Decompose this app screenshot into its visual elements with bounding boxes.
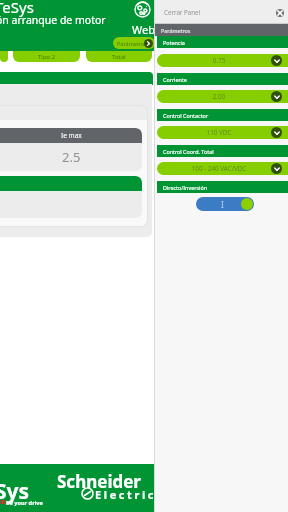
staticText: 110 VDC [158,128,280,137]
staticText: ón arranque de motor [0,13,106,27]
staticText: 100 - 240 VAC/VDC [158,164,280,173]
staticText: Control Coord. Total [163,148,214,155]
button[interactable]: 2.00 [157,90,288,103]
staticText: Corriente [163,76,187,83]
button[interactable]: Cerrar Panel [155,0,288,24]
staticText: Tipo 2 [38,53,56,61]
staticText: Web [132,22,155,37]
button[interactable]: Tipo 2 [13,51,80,62]
button[interactable]: Cerrar panel [276,9,284,17]
staticText: Control Contactor [163,112,209,119]
button[interactable]: 110 VDC [157,126,288,139]
staticText: Sys [0,477,30,506]
staticText: 0.75 [158,56,280,65]
staticText: 2.5 [62,148,81,166]
staticText: Electric [95,487,157,502]
staticText: Parámetros [161,27,191,34]
staticText: Parámetros [117,40,148,47]
button[interactable]: 0.75 [157,54,288,67]
staticText: Schneider [57,470,141,493]
button[interactable]: Total [86,51,152,62]
staticText: TeSys [0,0,34,17]
button[interactable]: Parámetros [113,37,155,49]
button[interactable]: 100 - 240 VAC/VDC [157,162,288,175]
button[interactable]: Directo / Inversión [196,197,254,211]
button[interactable] [0,51,8,62]
staticText: Ie max [61,131,82,140]
staticText: be your drive [6,499,43,507]
staticText: I [221,199,224,210]
staticText: 2.00 [158,92,280,101]
staticText: Directo/Inversión [163,184,208,191]
staticText: Total [112,53,126,61]
staticText: Potencia [163,39,185,46]
staticText: Cerrar Panel [164,8,201,16]
